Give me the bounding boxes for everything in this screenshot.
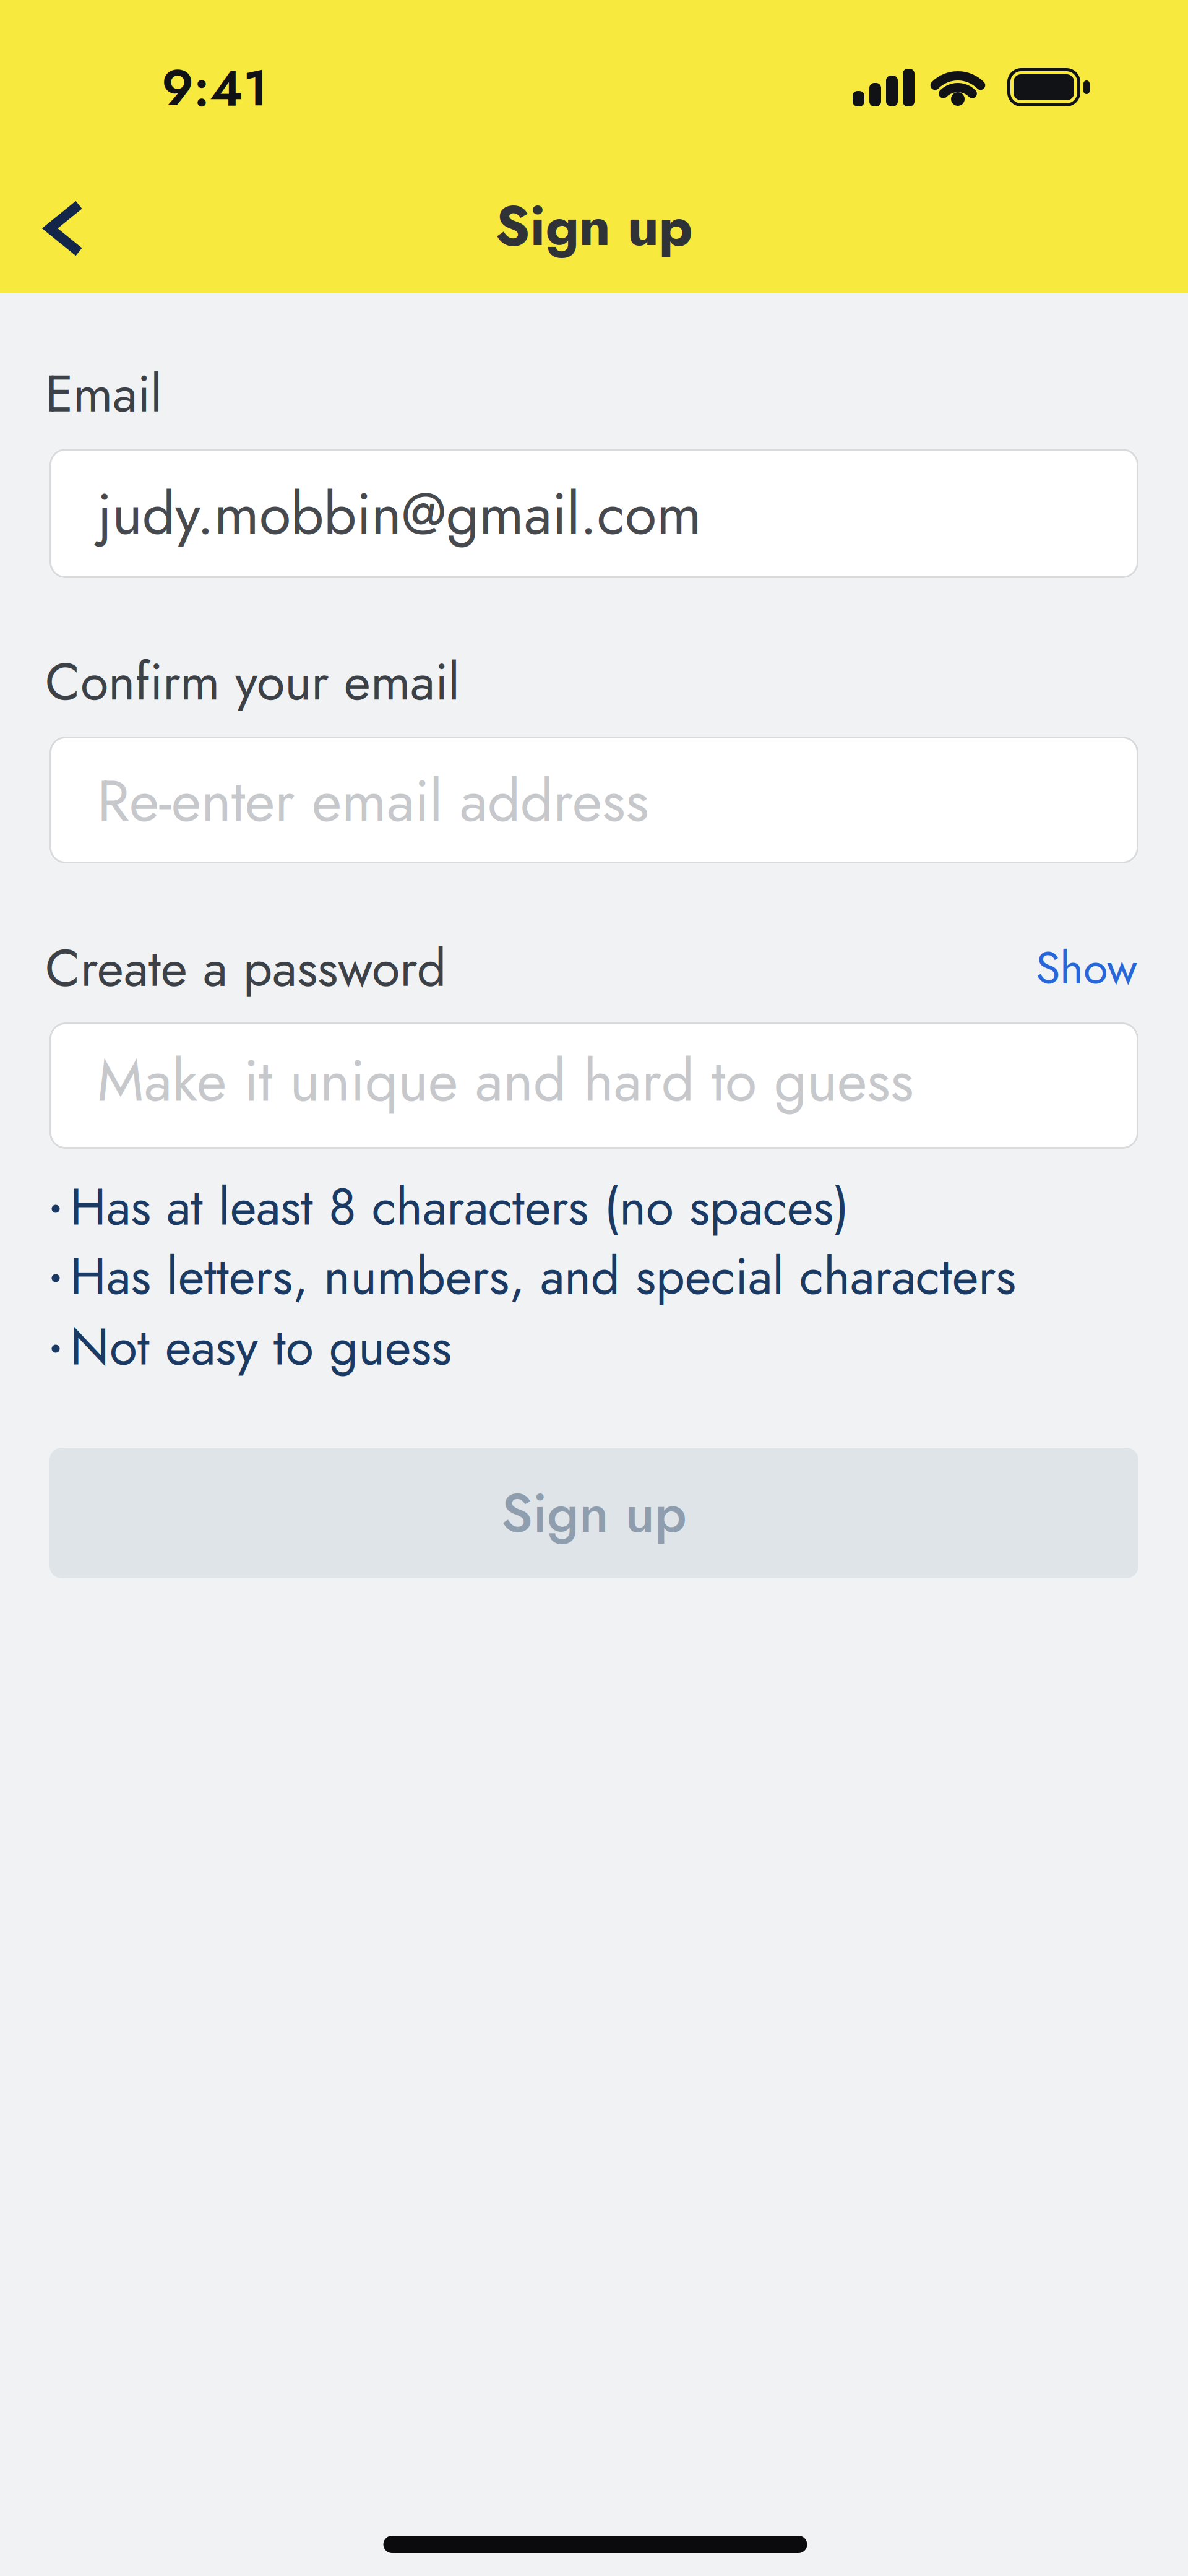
button[interactable]: Confirm your email	[49, 737, 1138, 863]
button[interactable]: Back	[50, 205, 79, 252]
staticText: Has letters, numbers, and special charac…	[70, 1240, 1016, 1313]
staticText: Confirm your email	[45, 645, 460, 719]
staticText: Sign up	[501, 1474, 687, 1552]
button[interactable]: Show	[1036, 936, 1137, 1000]
staticText: Sign up	[495, 186, 693, 266]
button[interactable]: Email, judy.mobbin@gmail.com	[49, 449, 1138, 578]
staticText: Re-enter email address	[97, 759, 649, 843]
staticText: Not easy to guess	[70, 1310, 452, 1384]
button[interactable]: Create a password	[49, 1022, 1138, 1149]
staticText: Make it unique and hard to guess	[97, 1039, 914, 1122]
staticText: Create a password	[45, 931, 446, 1005]
staticText: Has at least 8 characters (no spaces)	[70, 1170, 849, 1244]
staticText: 9:41	[161, 51, 268, 124]
staticText: Email	[45, 357, 162, 431]
staticText: judy.mobbin@gmail.com	[98, 472, 702, 555]
staticText: Show	[1036, 936, 1137, 1000]
button[interactable]: Sign up	[49, 1448, 1138, 1578]
